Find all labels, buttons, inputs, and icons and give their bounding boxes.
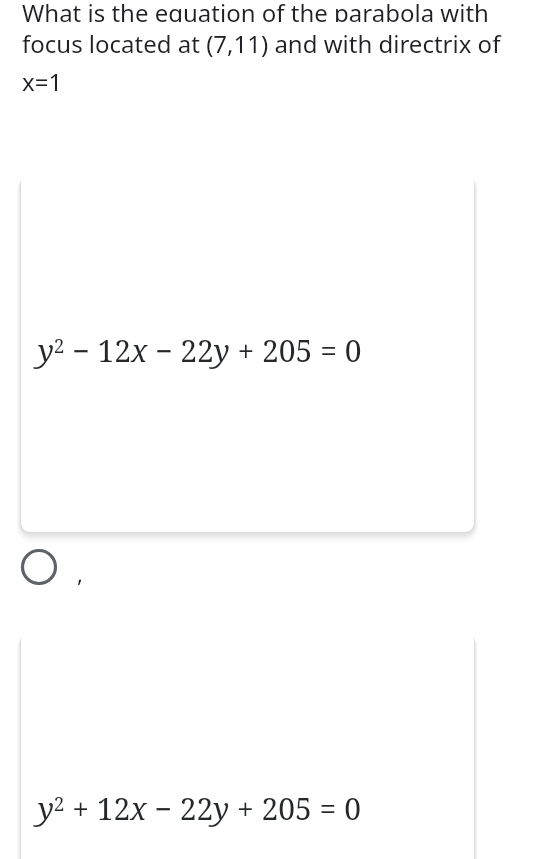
staticText: focus located at (7,11) and with directr… bbox=[22, 27, 501, 60]
button[interactable]: y2 + 12x − 22y + 205 = 0 bbox=[21, 631, 474, 859]
staticText: x=1 bbox=[22, 65, 63, 98]
button[interactable]: Select answer option bbox=[18, 546, 83, 588]
staticText: y2 − 12x − 22y + 205 = 0 bbox=[38, 330, 362, 371]
button[interactable]: y2 − 12x − 22y + 205 = 0 bbox=[21, 173, 474, 532]
staticText: y2 + 12x − 22y + 205 = 0 bbox=[38, 788, 361, 829]
staticText: , bbox=[77, 558, 83, 588]
staticText: What is the equation of the parabola wit… bbox=[22, 0, 489, 22]
